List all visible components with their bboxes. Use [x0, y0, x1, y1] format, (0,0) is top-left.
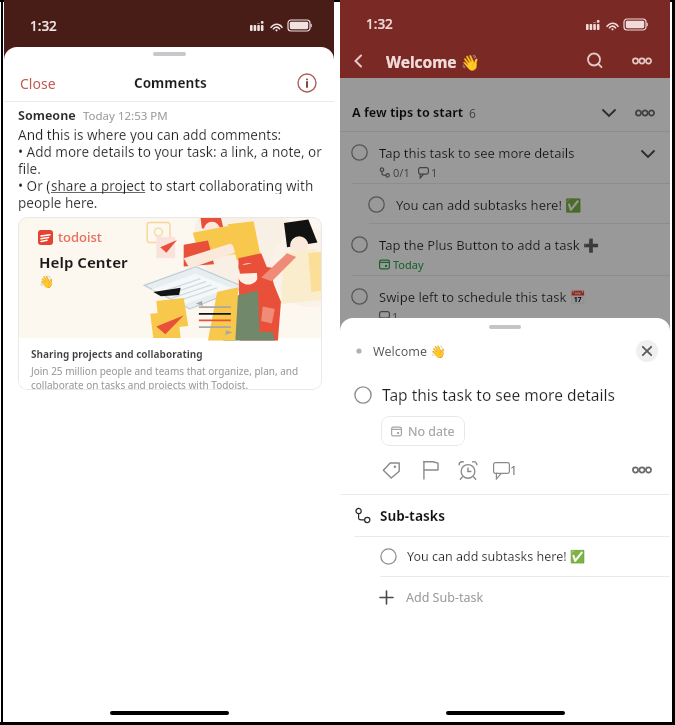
staticText: 1	[392, 309, 399, 324]
button[interactable]: Add Sub-task	[340, 577, 670, 617]
button[interactable]: Reminders	[455, 457, 481, 483]
staticText: Tap the Plus Button to add a task ➕	[379, 236, 600, 254]
staticText: Tap this task to see more details	[382, 384, 615, 405]
button[interactable]: No date	[381, 416, 465, 446]
button[interactable]: Priority	[417, 457, 443, 483]
staticText: Comments	[134, 74, 207, 92]
staticText: Close	[20, 74, 56, 93]
staticText: people here.	[18, 194, 98, 211]
button[interactable]: Close	[636, 340, 658, 362]
button[interactable]: Swipe left to schedule this task 📅	[340, 276, 670, 327]
button[interactable]: Close	[4, 66, 72, 101]
staticText: Help Center	[39, 252, 128, 272]
staticText: Swipe left to schedule this task 📅	[379, 288, 586, 306]
staticText: to start collaborating with	[146, 177, 314, 194]
button[interactable]: Info	[297, 73, 317, 93]
button[interactable]: More options	[630, 458, 654, 482]
staticText: 1	[431, 165, 438, 180]
staticText: No date	[408, 423, 455, 440]
button[interactable]: Tap the Plus Button to add a task ➕	[340, 224, 670, 275]
staticText: Welcome 👋	[386, 51, 480, 72]
button[interactable]: Comments	[493, 462, 518, 479]
staticText: file.	[18, 160, 41, 177]
staticText: 6	[469, 105, 476, 121]
staticText: todoist	[58, 228, 102, 246]
staticText: Today 12:53 PM	[83, 108, 168, 124]
staticText: Sub-tasks	[380, 507, 445, 525]
staticText: You can add subtasks here! ✅	[407, 548, 586, 565]
button[interactable]: Labels	[379, 457, 405, 483]
staticText: share a project	[51, 177, 146, 194]
button[interactable]: todoist	[18, 217, 322, 390]
button[interactable]: Tap this task to see more details	[340, 132, 670, 183]
staticText: You can add subtasks here! ✅	[396, 196, 582, 214]
staticText: 0/1	[393, 165, 410, 180]
staticText: Join 25 million people and teams that or…	[31, 364, 299, 378]
button[interactable]: Back	[345, 48, 371, 74]
staticText: • Add more details to your task: a link,…	[18, 143, 326, 160]
staticText: Sharing projects and collaborating	[31, 347, 203, 361]
staticText: 1:32	[366, 15, 393, 33]
staticText: Add Sub-task	[406, 589, 484, 606]
staticText: A few tips to start	[352, 104, 464, 121]
staticText: Today	[393, 257, 424, 272]
button[interactable]: Search	[581, 47, 609, 75]
staticText: Someone	[18, 107, 76, 124]
staticText: Welcome 👋	[373, 343, 446, 360]
button[interactable]: You can add subtasks here! ✅	[340, 184, 670, 223]
button[interactable]: More options	[628, 47, 656, 75]
staticText: 1:32	[30, 17, 57, 35]
staticText: 1	[510, 462, 518, 479]
staticText: Tap this task to see more details	[379, 144, 575, 162]
staticText: • Or (	[18, 177, 51, 194]
staticText: collaborate on tasks and projects with T…	[31, 378, 249, 390]
staticText: And this is where you can add comments:	[18, 126, 282, 143]
button[interactable]: You can add subtasks here! ✅	[340, 537, 670, 576]
staticText: 👋	[39, 275, 54, 289]
